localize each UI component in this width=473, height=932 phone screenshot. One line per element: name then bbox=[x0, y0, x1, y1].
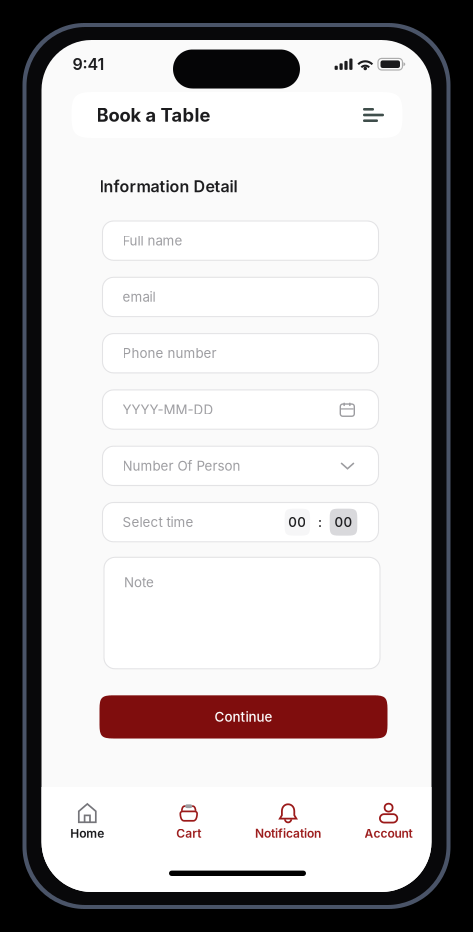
staticText: YYYY-MM-DD bbox=[122, 401, 213, 418]
staticText: Number Of Person bbox=[122, 458, 240, 474]
staticText: Information Detail bbox=[99, 177, 237, 196]
button[interactable]: Number Of Person bbox=[102, 446, 378, 485]
staticText: Full name bbox=[122, 233, 182, 249]
staticText: email bbox=[122, 289, 155, 305]
button[interactable]: Full name bbox=[102, 221, 378, 260]
staticText: Select time bbox=[122, 514, 193, 530]
button[interactable]: YYYY-MM-DD bbox=[102, 390, 378, 429]
staticText: 00 bbox=[288, 514, 306, 530]
button[interactable]: Account bbox=[344, 803, 434, 841]
staticText: Home bbox=[70, 826, 104, 841]
staticText: 9:41 bbox=[72, 54, 104, 74]
staticText: Cart bbox=[176, 826, 201, 841]
button[interactable]: Phone number bbox=[102, 334, 378, 373]
staticText: Continue bbox=[214, 709, 272, 725]
staticText: Phone number bbox=[122, 345, 216, 361]
button[interactable]: Notification bbox=[243, 803, 333, 841]
staticText: 00 bbox=[334, 514, 352, 530]
button[interactable]: email bbox=[102, 277, 378, 317]
button[interactable]: Select time bbox=[102, 502, 378, 542]
staticText: : bbox=[318, 514, 322, 530]
staticText: Notification bbox=[255, 826, 321, 841]
staticText: Account bbox=[365, 826, 413, 841]
button[interactable]: Continue bbox=[99, 695, 387, 738]
staticText: Book a Table bbox=[96, 104, 210, 126]
button[interactable]: Home bbox=[42, 803, 132, 841]
button[interactable]: Cart bbox=[144, 803, 234, 841]
staticText: Note bbox=[124, 574, 154, 590]
button[interactable]: Menu bbox=[358, 100, 388, 130]
button[interactable]: Note bbox=[104, 557, 380, 669]
